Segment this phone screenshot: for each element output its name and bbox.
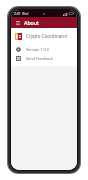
button[interactable]: Version information	[11, 45, 77, 54]
button[interactable]: Crypto Coordinator	[11, 31, 77, 41]
other: Send feedback	[15, 55, 22, 62]
staticText: Wed	[22, 12, 29, 16]
staticText: Version 1.0.0	[26, 47, 49, 52]
staticText: About	[24, 19, 40, 26]
staticText: Crypto Coordinator	[26, 33, 68, 39]
button[interactable]: Open navigation menu	[14, 19, 21, 26]
staticText: Send Feedback	[26, 56, 53, 61]
staticText: 2:37	[14, 12, 21, 16]
other: Version information	[15, 46, 22, 53]
button[interactable]: Send feedback	[11, 54, 77, 63]
